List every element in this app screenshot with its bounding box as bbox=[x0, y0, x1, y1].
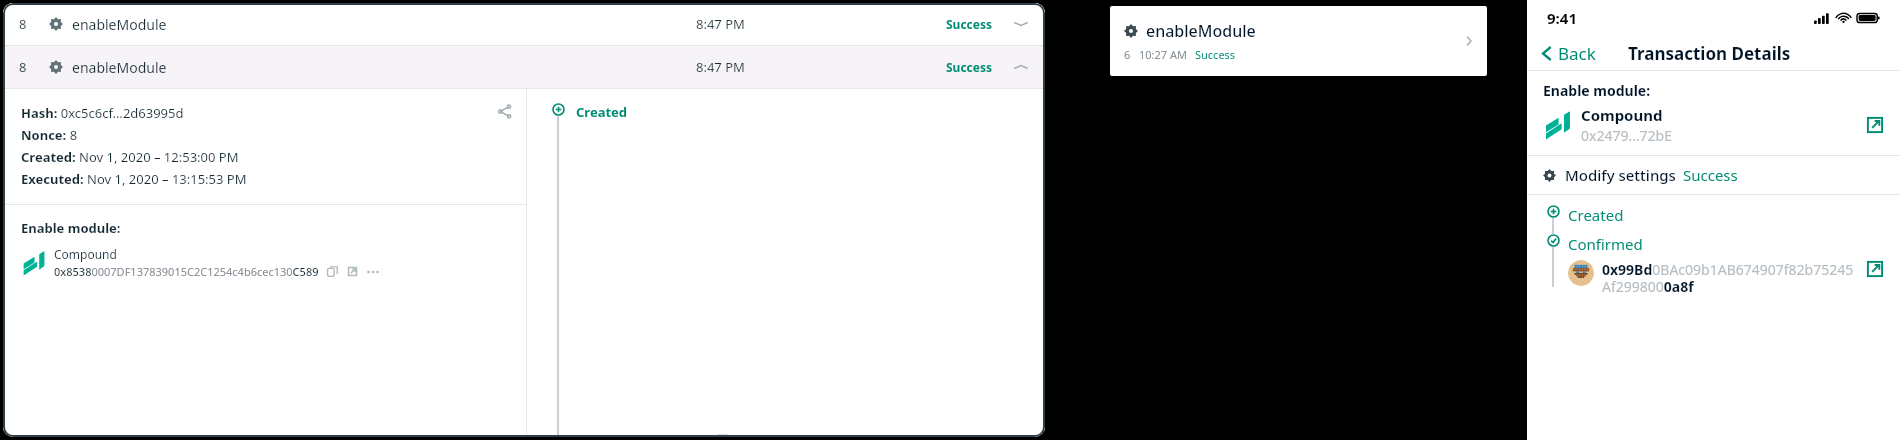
staticText: Success bbox=[1683, 165, 1738, 185]
button[interactable]: Back bbox=[1541, 42, 1596, 65]
staticText: Back bbox=[1558, 42, 1596, 65]
staticText: 8:47 PM bbox=[696, 15, 745, 33]
staticText: 0x85380007DF137839015C2C1254c4b6cec130C5… bbox=[54, 264, 319, 279]
staticText: Success bbox=[946, 59, 993, 75]
staticText: enableModule bbox=[1146, 20, 1256, 42]
button[interactable]: Compound bbox=[21, 246, 379, 279]
button[interactable]: Open details bbox=[1461, 33, 1477, 49]
staticText: 8:47 PM bbox=[696, 58, 745, 76]
staticText: enableModule bbox=[72, 15, 167, 34]
staticText: 6 bbox=[1124, 47, 1131, 62]
staticText: Modify settings bbox=[1565, 165, 1676, 185]
button[interactable]: Open in explorer bbox=[1866, 260, 1884, 278]
staticText: Enable module: bbox=[21, 219, 121, 237]
staticText: 8 bbox=[19, 58, 27, 76]
button[interactable]: Open in explorer bbox=[1866, 116, 1884, 134]
staticText: 9:41 bbox=[1547, 8, 1577, 28]
button[interactable]: Copy address bbox=[327, 266, 338, 277]
button[interactable]: Expand bbox=[1013, 16, 1029, 32]
button[interactable]: Compound bbox=[1543, 105, 1884, 145]
button[interactable]: 0x99Bd0BAc09b1AB674907f82b75245Af2998000… bbox=[1568, 260, 1884, 296]
staticText: enableModule bbox=[72, 58, 167, 77]
staticText: Created bbox=[1568, 205, 1624, 225]
staticText: Created: Nov 1, 2020 – 12:53:00 PM bbox=[21, 148, 239, 166]
button[interactable]: Share bbox=[497, 104, 512, 119]
staticText: Hash: 0xc5c6cf…2d63995d bbox=[21, 104, 184, 122]
staticText: Confirmed bbox=[1568, 234, 1643, 254]
button[interactable]: Modify settings bbox=[1527, 156, 1900, 194]
button[interactable]: More options bbox=[367, 266, 379, 278]
staticText: 8 bbox=[19, 15, 27, 33]
staticText: 10:27 AM bbox=[1139, 47, 1187, 62]
button[interactable]: Open in explorer bbox=[347, 266, 358, 277]
staticText: Success bbox=[946, 16, 993, 32]
button[interactable]: enableModule bbox=[1110, 6, 1487, 76]
button[interactable]: Collapse bbox=[1013, 59, 1029, 75]
staticText: Compound bbox=[54, 246, 117, 262]
button[interactable]: 8 bbox=[3, 46, 1045, 88]
staticText: Enable module: bbox=[1543, 81, 1651, 100]
staticText: 0x99Bd0BAc09b1AB674907f82b75245Af2998000… bbox=[1602, 260, 1860, 296]
button[interactable]: 8 bbox=[3, 3, 1045, 45]
staticText: 0x2479…72bE bbox=[1581, 126, 1672, 145]
staticText: Success bbox=[1195, 47, 1236, 62]
staticText: Created bbox=[576, 103, 628, 121]
staticText: Transaction Details bbox=[1628, 42, 1791, 65]
staticText: Executed: Nov 1, 2020 – 13:15:53 PM bbox=[21, 170, 247, 188]
staticText: Compound bbox=[1581, 105, 1663, 125]
staticText: Nonce: 8 bbox=[21, 126, 78, 144]
